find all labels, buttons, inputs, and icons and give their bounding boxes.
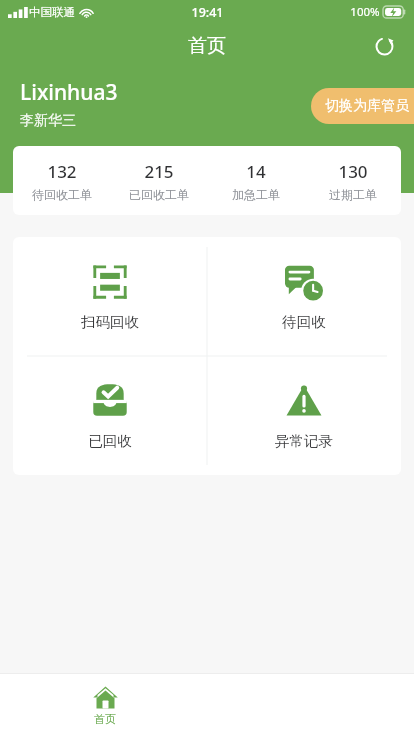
button[interactable]: 扫码回收 — [13, 237, 207, 356]
staticText: 19:41 — [191, 4, 224, 21]
button[interactable]: 130 — [304, 151, 401, 211]
button[interactable]: 215 — [110, 151, 207, 211]
staticText: 首页 — [94, 712, 116, 726]
staticText: Lixinhua3 — [20, 78, 118, 107]
staticText: 切换为库管员 — [325, 97, 409, 115]
staticText: 130 — [338, 160, 368, 183]
button[interactable]: 已回收 — [13, 356, 207, 475]
staticText: 过期工单 — [329, 187, 377, 202]
button[interactable]: 异常记录 — [207, 356, 401, 475]
staticText: 加急工单 — [232, 187, 280, 202]
staticText: 100% — [350, 4, 380, 20]
staticText: 李新华三 — [20, 112, 76, 130]
button[interactable]: 132 — [13, 151, 110, 211]
button[interactable]: 14 — [207, 151, 304, 211]
button[interactable]: 首页 — [69, 674, 141, 736]
button[interactable]: 切换为库管员 — [311, 88, 414, 124]
staticText: 132 — [47, 160, 77, 183]
staticText: 已回收工单 — [129, 187, 189, 202]
staticText: 待回收工单 — [32, 187, 92, 202]
staticText: 中国联通 — [29, 5, 75, 19]
staticText: 已回收 — [88, 432, 132, 450]
button[interactable]: 待回收 — [207, 237, 401, 356]
staticText: 异常记录 — [275, 432, 333, 450]
staticText: 首页 — [188, 34, 226, 58]
staticText: 14 — [246, 160, 266, 183]
staticText: 215 — [144, 160, 174, 183]
button[interactable]: Refresh — [368, 30, 400, 62]
staticText: 待回收 — [282, 313, 326, 331]
staticText: 扫码回收 — [81, 313, 139, 331]
